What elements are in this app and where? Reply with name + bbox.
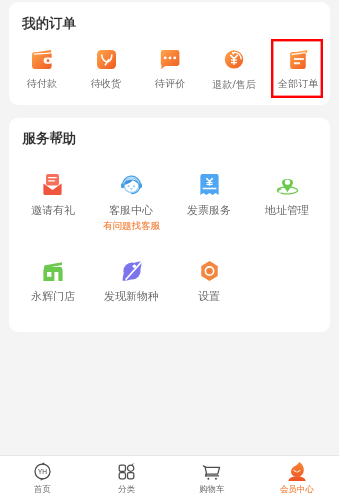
button[interactable]: 客服中心 — [92, 174, 170, 232]
staticText: 发票服务 — [187, 203, 231, 217]
button[interactable]: 待付款 — [9, 49, 74, 90]
staticText: 首页 — [34, 484, 51, 495]
other: 分类 — [118, 463, 135, 480]
staticText: 服务帮助 — [22, 130, 76, 147]
staticText: 永辉门店 — [31, 289, 75, 303]
staticText: 我的订单 — [22, 15, 76, 32]
staticText: 购物车 — [199, 484, 225, 495]
button[interactable]: 购物车 — [169, 456, 254, 500]
staticText: 有问题找客服 — [103, 220, 160, 232]
button[interactable]: 地址管理 — [248, 174, 326, 217]
button[interactable]: 设置 — [170, 260, 248, 303]
staticText: 会员中心 — [280, 484, 314, 495]
button[interactable]: 退款/售后 — [202, 49, 266, 91]
other: 会员中心 — [288, 462, 306, 481]
other: 购物车 — [203, 463, 221, 481]
staticText: 设置 — [198, 289, 220, 303]
staticText: 待付款 — [27, 77, 57, 90]
staticText: 地址管理 — [265, 203, 309, 217]
button[interactable]: 永辉门店 — [13, 260, 92, 303]
button[interactable]: 待收货 — [74, 49, 138, 90]
staticText: 分类 — [118, 484, 135, 495]
button[interactable]: 发票服务 — [170, 174, 248, 217]
button[interactable]: 会员中心 — [254, 456, 339, 500]
button[interactable]: 邀请有礼 — [13, 174, 92, 217]
button[interactable]: 首页 — [0, 456, 84, 500]
staticText: 全部订单 — [278, 77, 318, 90]
staticText: 退款/售后 — [212, 77, 256, 91]
staticText: 客服中心 — [109, 203, 153, 217]
button[interactable]: 全部订单 — [266, 49, 330, 90]
other: 首页 — [34, 462, 51, 481]
staticText: 发现新物种 — [104, 289, 159, 303]
button[interactable]: 待评价 — [138, 49, 202, 90]
button[interactable]: 发现新物种 — [92, 260, 170, 303]
staticText: 待评价 — [155, 77, 185, 90]
staticText: 待收货 — [91, 77, 121, 90]
staticText: 邀请有礼 — [31, 203, 75, 217]
button[interactable]: 分类 — [84, 456, 169, 500]
staticText: YH — [38, 467, 48, 477]
